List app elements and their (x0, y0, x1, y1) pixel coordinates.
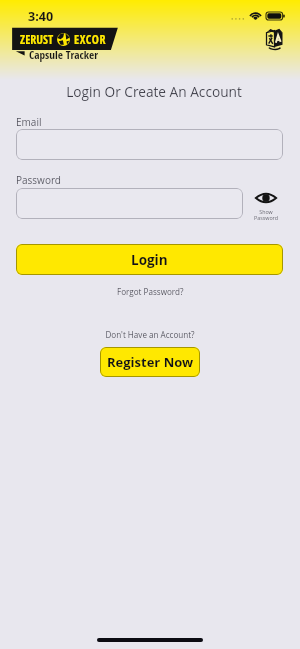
staticText: ZERUST (20, 31, 54, 47)
staticText: 3:40 (28, 8, 54, 25)
staticText: Capsule Tracker (29, 47, 98, 62)
button[interactable]: Login (16, 244, 283, 275)
button[interactable]: Register Now (100, 347, 200, 377)
staticText: Show Password (254, 208, 278, 221)
staticText: Register Now (107, 353, 194, 371)
button[interactable]: Show Password (248, 192, 284, 221)
staticText: Password (16, 173, 61, 187)
staticText: EXCOR (74, 31, 107, 47)
button[interactable] (16, 129, 283, 160)
staticText: Login Or Create An Account (4, 82, 300, 101)
staticText: Login (131, 251, 168, 269)
staticText: Email (16, 115, 42, 129)
button[interactable]: Forgot Password? (111, 284, 190, 299)
button[interactable]: Translate (266, 28, 283, 49)
button[interactable] (16, 188, 243, 219)
staticText: Don't Have an Account? (0, 329, 300, 340)
